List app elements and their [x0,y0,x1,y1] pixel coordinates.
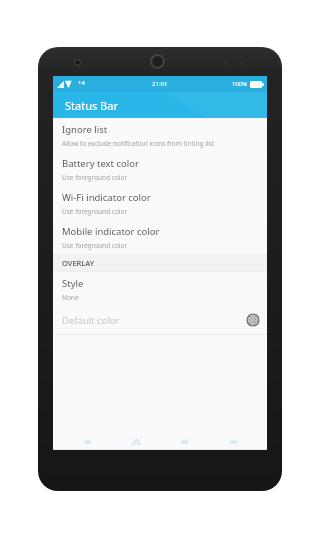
button[interactable]: Style [53,272,267,306]
staticText: Battery text color [62,157,139,170]
staticText: Style [62,277,84,290]
staticText: Mobile indicator color [62,225,160,238]
staticText: Default color [62,314,120,327]
staticText: 100% [232,80,248,88]
button[interactable]: Status Bar [53,92,267,118]
other: Default color swatch [247,314,259,326]
staticText: None [62,293,79,302]
button[interactable]: Mobile indicator color [53,220,267,254]
staticText: Wi-Fi indicator color [62,191,151,204]
staticText: OVERLAY [62,258,95,268]
button[interactable]: Back [72,434,102,450]
staticText: Allow to exclude notification icons from… [62,139,215,148]
button[interactable]: Default color [53,306,267,334]
staticText: Use foreground color [62,207,128,216]
staticText: Use foreground color [62,173,128,182]
button[interactable]: Wi-Fi indicator color [53,186,267,220]
staticText: +4 [78,79,85,87]
staticText: Status Bar [65,98,118,113]
button[interactable]: Home [121,434,151,450]
button[interactable]: Recents [169,434,199,450]
staticText: Use foreground color [62,241,128,250]
staticText: 21:01 [152,80,168,88]
button[interactable]: Ignore list [53,118,267,152]
button[interactable]: Menu [218,434,248,450]
staticText: Ignore list [62,123,108,136]
button[interactable]: Battery text color [53,152,267,186]
